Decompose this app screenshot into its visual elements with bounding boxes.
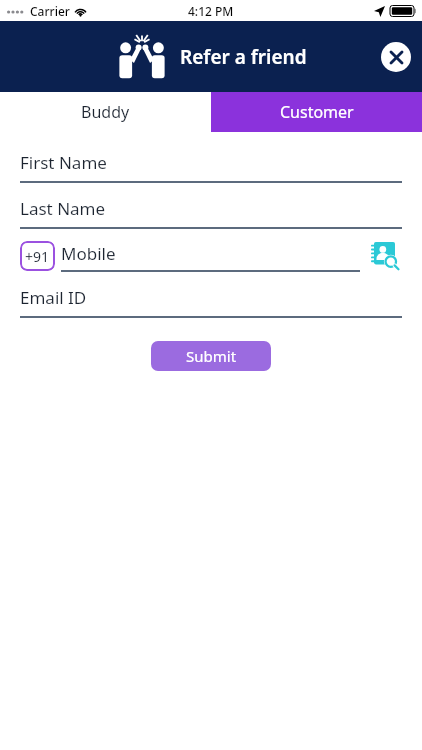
staticText: Refer a friend [180, 44, 307, 70]
button[interactable]: Close [381, 42, 411, 72]
button[interactable]: Submit [151, 341, 271, 371]
button[interactable]: Last Name [20, 194, 402, 229]
staticText: Buddy [81, 101, 130, 123]
staticText: 4:12 PM [188, 3, 234, 19]
staticText: First Name [20, 151, 107, 174]
staticText: Customer [280, 101, 354, 123]
staticText: Submit [186, 346, 237, 366]
button[interactable]: Email ID [20, 283, 402, 318]
button[interactable]: Buddy [0, 92, 211, 132]
button[interactable]: +91 [20, 241, 55, 271]
button[interactable]: Mobile [61, 240, 360, 272]
button[interactable]: First Name [20, 148, 402, 183]
staticText: Mobile [61, 242, 116, 265]
staticText: Last Name [20, 197, 106, 220]
button[interactable]: Customer [211, 92, 422, 132]
staticText: Email ID [20, 286, 87, 309]
button[interactable]: Pick contact [370, 240, 402, 272]
staticText: Carrier [30, 3, 70, 19]
staticText: +91 [25, 247, 50, 266]
